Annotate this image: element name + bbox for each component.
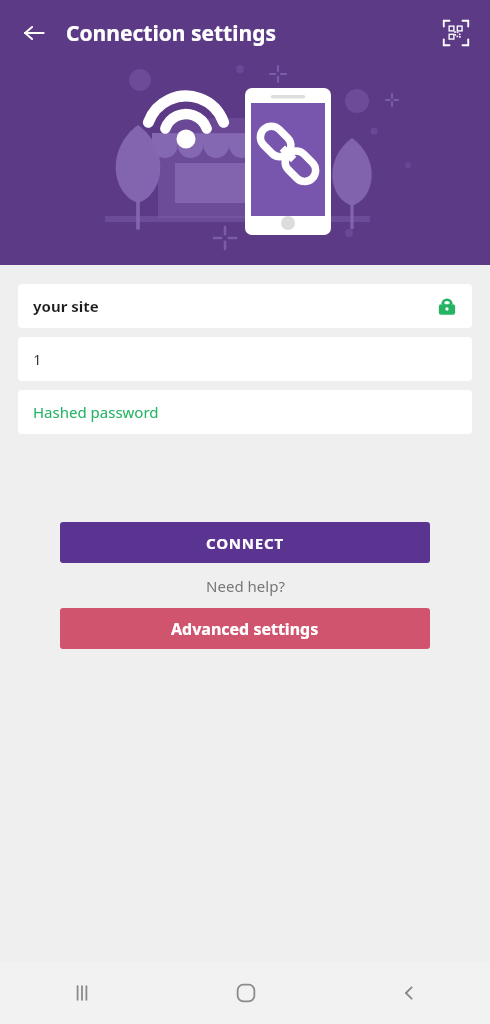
staticText: Connection settings xyxy=(66,19,276,48)
button[interactable]: 1 xyxy=(18,337,472,381)
staticText: Need help? xyxy=(206,576,285,596)
button[interactable]: Home xyxy=(164,962,327,1024)
button[interactable]: Hashed password xyxy=(18,390,472,434)
button[interactable]: CONNECT xyxy=(60,522,430,563)
staticText: Hashed password xyxy=(33,402,159,422)
button[interactable]: Need help? xyxy=(0,576,490,596)
staticText: CONNECT xyxy=(206,533,284,553)
staticText: your site xyxy=(33,296,99,316)
button[interactable]: Advanced settings xyxy=(60,608,430,649)
staticText: 1 xyxy=(33,349,42,369)
staticText: Advanced settings xyxy=(171,618,319,640)
button[interactable]: your site xyxy=(18,284,472,328)
button[interactable]: Back xyxy=(12,11,56,55)
button[interactable]: Recent apps xyxy=(0,962,164,1024)
button[interactable]: Scan QR code xyxy=(434,11,478,55)
button[interactable]: Back xyxy=(327,962,490,1024)
